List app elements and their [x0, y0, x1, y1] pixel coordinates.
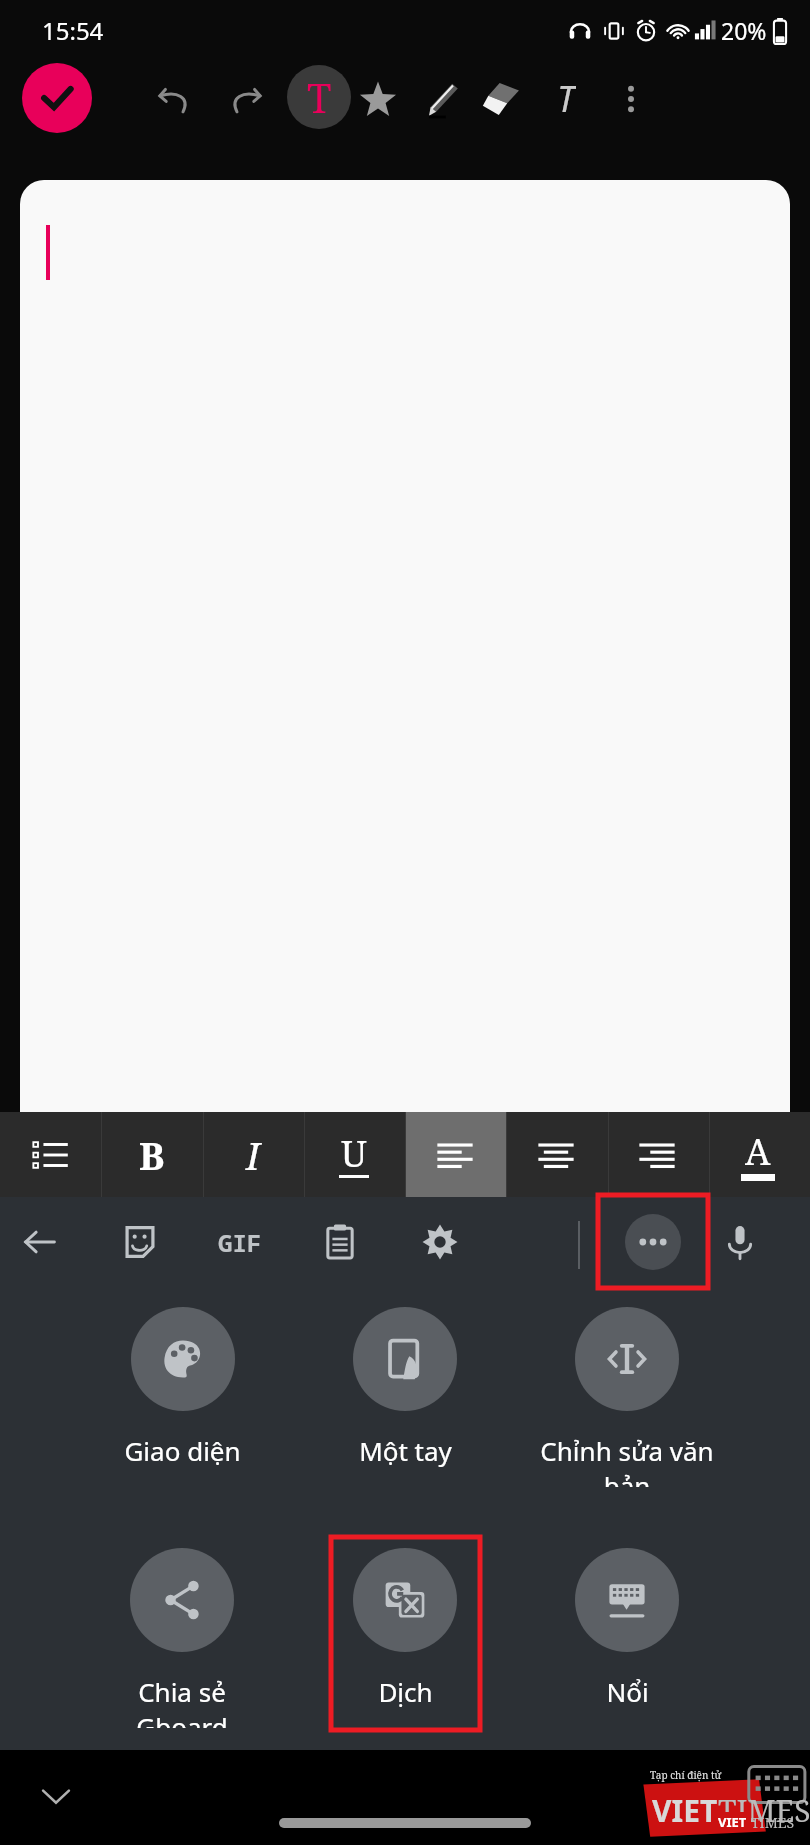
button[interactable]: Align right	[606, 1112, 707, 1197]
button[interactable]	[20, 180, 790, 1112]
staticText: Tạp chí điện tử	[650, 1768, 722, 1782]
staticText: Nổi	[606, 1674, 649, 1709]
staticText: T	[557, 74, 576, 120]
button[interactable]: Text color	[707, 1112, 808, 1197]
button[interactable]: Dịch	[315, 1548, 495, 1728]
button[interactable]: Favorite	[355, 76, 401, 122]
button[interactable]: Underline	[303, 1112, 404, 1197]
staticText: Chỉnh sửa văn bản	[537, 1433, 717, 1487]
button[interactable]: Italic	[202, 1112, 303, 1197]
staticText: T	[307, 70, 332, 124]
staticText: VIET	[718, 1813, 747, 1831]
staticText: Dịch	[378, 1674, 433, 1709]
staticText: U	[341, 1129, 367, 1178]
button[interactable]: Một tay	[315, 1307, 495, 1487]
staticText: 20%	[721, 15, 767, 46]
staticText: GIF	[218, 1226, 262, 1259]
button[interactable]: Giao diện	[92, 1307, 272, 1487]
staticText: Một tay	[359, 1433, 452, 1468]
button[interactable]: Handwriting	[543, 74, 589, 120]
staticText: TIMES	[751, 1813, 795, 1832]
button[interactable]: Chỉnh sửa văn bản	[537, 1307, 717, 1487]
staticText: A	[745, 1127, 771, 1176]
button[interactable]: Hide keyboard	[28, 1768, 84, 1824]
button[interactable]: Done	[22, 63, 92, 133]
button[interactable]: Clipboard	[312, 1214, 368, 1270]
button[interactable]: Nổi	[537, 1548, 717, 1728]
button[interactable]: More options	[608, 76, 654, 122]
button[interactable]: Eraser	[480, 76, 526, 122]
button[interactable]: Back	[12, 1214, 68, 1270]
button[interactable]: Undo	[152, 76, 198, 122]
button[interactable]: Stickers	[112, 1214, 168, 1270]
button[interactable]: Chia sẻ Gboard	[92, 1548, 272, 1728]
staticText: TIMES	[718, 1790, 810, 1831]
button[interactable]: Bold	[101, 1112, 202, 1197]
staticText: Chia sẻ Gboard	[92, 1674, 272, 1728]
button[interactable]: Redo	[222, 76, 268, 122]
button[interactable]: More	[625, 1214, 681, 1270]
button[interactable]: Settings	[412, 1214, 468, 1270]
staticText: I	[246, 1129, 260, 1181]
button[interactable]: Align left	[404, 1112, 505, 1197]
staticText: Giao diện	[124, 1433, 241, 1468]
staticText: B	[139, 1129, 165, 1181]
staticText: VIET	[652, 1790, 718, 1831]
button[interactable]: Pen	[418, 76, 464, 122]
button[interactable]: Voice input	[712, 1214, 768, 1270]
button[interactable]: List	[0, 1112, 101, 1197]
button[interactable]: Text style	[287, 65, 351, 129]
staticText: 15:54	[42, 14, 104, 47]
button[interactable]: Align center	[505, 1112, 606, 1197]
button[interactable]: GIF	[212, 1214, 268, 1270]
